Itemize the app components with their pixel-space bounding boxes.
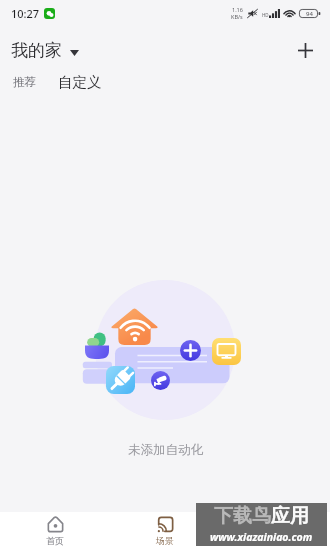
button[interactable]: 自定义 bbox=[56, 70, 104, 94]
staticText: 未添加自动化 bbox=[128, 442, 203, 458]
button[interactable]: 首页 bbox=[0, 512, 110, 550]
staticText: HD bbox=[262, 12, 269, 18]
staticText: 场景 bbox=[156, 535, 174, 546]
staticText: 10:27 bbox=[11, 6, 40, 21]
staticText: 我的 bbox=[266, 535, 284, 546]
staticText: KB/s bbox=[231, 13, 243, 20]
staticText: 94 bbox=[306, 10, 313, 18]
staticText: www.xiazainiao.com bbox=[210, 530, 313, 544]
button[interactable]: 推荐 bbox=[11, 72, 38, 92]
staticText: 推荐 bbox=[13, 75, 36, 89]
button[interactable]: 场景 bbox=[110, 512, 220, 550]
staticText: 1.16 bbox=[232, 6, 243, 13]
staticText: 应用 bbox=[271, 504, 309, 528]
staticText: 自定义 bbox=[58, 73, 102, 91]
button[interactable]: 我的 bbox=[220, 512, 330, 550]
button[interactable]: 我的家 bbox=[11, 40, 79, 61]
button[interactable]: Add bbox=[290, 35, 320, 65]
staticText: 下载鸟 bbox=[214, 504, 271, 528]
staticText: 我的家 bbox=[11, 40, 62, 61]
staticText: 首页 bbox=[46, 535, 64, 546]
